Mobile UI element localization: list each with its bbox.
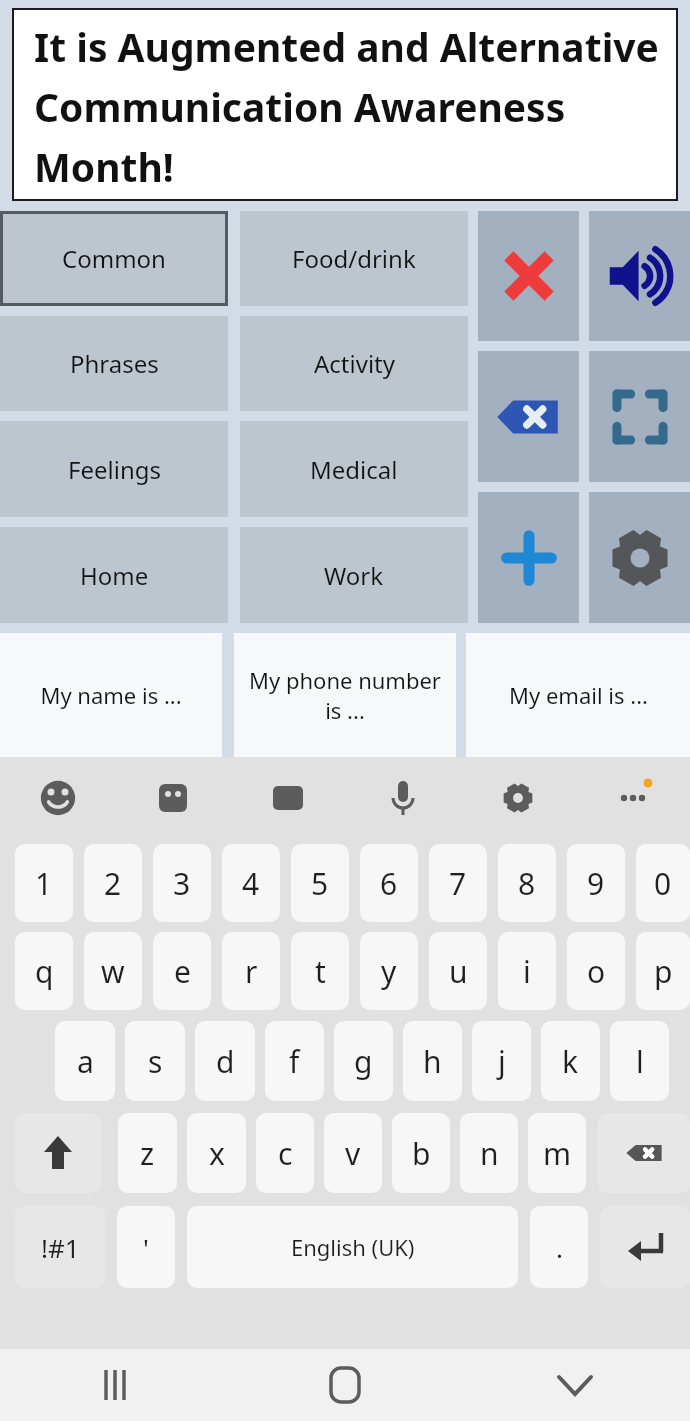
button[interactable]: !#1 [15, 1206, 105, 1288]
button[interactable]: 0 [636, 844, 690, 922]
staticText: 2 [104, 863, 122, 904]
button[interactable]: Home [0, 527, 228, 623]
staticText: . [556, 1230, 563, 1265]
staticText: 9 [587, 863, 605, 904]
staticText: 7 [449, 863, 467, 904]
staticText: y [381, 951, 397, 992]
staticText: q [35, 951, 54, 992]
button[interactable]: x [187, 1113, 246, 1193]
staticText: i [523, 951, 531, 992]
button[interactable]: l [610, 1021, 669, 1101]
button[interactable]: Activity [240, 316, 468, 411]
button[interactable]: g [334, 1021, 393, 1101]
button[interactable]: Medical [240, 421, 468, 517]
staticText: j [498, 1041, 506, 1082]
button[interactable]: 7 [429, 844, 487, 922]
button[interactable]: More [575, 757, 690, 839]
staticText: 6 [380, 863, 398, 904]
staticText: Food/drink [292, 242, 416, 275]
button[interactable]: 3 [153, 844, 211, 922]
button[interactable]: Emoji [0, 757, 115, 839]
staticText: Phrases [70, 347, 159, 380]
staticText: z [140, 1133, 155, 1174]
button[interactable]: Phrases [0, 316, 228, 411]
button[interactable]: Clear [478, 211, 579, 341]
button[interactable]: m [528, 1113, 586, 1193]
button[interactable]: Fullscreen [589, 351, 690, 482]
staticText: m [543, 1133, 572, 1174]
staticText: l [636, 1041, 644, 1082]
button[interactable]: z [118, 1113, 177, 1193]
button[interactable]: Speak [589, 211, 690, 341]
button[interactable]: n [460, 1113, 518, 1193]
button[interactable]: r [222, 932, 280, 1010]
staticText: Work [324, 559, 384, 592]
button[interactable]: Work [240, 527, 468, 623]
button[interactable]: j [472, 1021, 531, 1101]
button[interactable]: Add [478, 492, 579, 623]
button[interactable]: 6 [360, 844, 418, 922]
button[interactable]: Backspace [478, 351, 579, 482]
staticText: My name is ... [40, 680, 182, 710]
staticText: It is Augmented and Alternative Communic… [34, 20, 678, 194]
staticText: r [245, 951, 258, 992]
button[interactable]: Stickers [115, 757, 230, 839]
staticText: English (UK) [291, 1232, 415, 1262]
button[interactable]: ' [117, 1206, 175, 1288]
button[interactable]: c [256, 1113, 314, 1193]
button[interactable]: Hide keyboard [460, 1349, 690, 1421]
button[interactable]: Backspace [598, 1113, 690, 1193]
staticText: ' [143, 1230, 149, 1265]
button[interactable]: My name is ... [0, 633, 222, 757]
button[interactable]: f [265, 1021, 324, 1101]
staticText: My phone number is ... [244, 665, 446, 725]
button[interactable]: Common [0, 211, 228, 306]
button[interactable]: Settings [589, 492, 690, 623]
button[interactable]: 9 [567, 844, 625, 922]
staticText: !#1 [41, 1230, 80, 1265]
staticText: 1 [35, 863, 53, 904]
button[interactable]: Keyboard settings [460, 757, 575, 839]
button[interactable]: t [291, 932, 349, 1010]
staticText: k [562, 1041, 579, 1082]
button[interactable]: 2 [84, 844, 142, 922]
button[interactable]: It is Augmented and Alternative Communic… [12, 8, 678, 201]
button[interactable]: My email is ... [466, 633, 690, 757]
button[interactable]: GIF [230, 757, 345, 839]
button[interactable]: Enter [600, 1206, 690, 1288]
staticText: t [315, 951, 326, 992]
button[interactable]: 4 [222, 844, 280, 922]
button[interactable]: 8 [498, 844, 556, 922]
button[interactable]: v [324, 1113, 382, 1193]
button[interactable]: w [84, 932, 142, 1010]
button[interactable]: i [498, 932, 556, 1010]
staticText: p [654, 951, 673, 992]
button[interactable]: h [403, 1021, 462, 1101]
button[interactable]: e [153, 932, 211, 1010]
button[interactable]: English (UK) [187, 1206, 518, 1288]
button[interactable]: Recents [0, 1349, 230, 1421]
button[interactable]: Shift [15, 1113, 101, 1193]
button[interactable]: My phone number is ... [234, 633, 456, 757]
button[interactable]: y [360, 932, 418, 1010]
staticText: s [148, 1041, 163, 1082]
button[interactable]: a [55, 1021, 115, 1101]
button[interactable]: 5 [291, 844, 349, 922]
button[interactable]: p [636, 932, 690, 1010]
button[interactable]: Home [230, 1349, 460, 1421]
button[interactable]: q [15, 932, 73, 1010]
staticText: Home [80, 559, 149, 592]
button[interactable]: . [530, 1206, 588, 1288]
button[interactable]: k [541, 1021, 600, 1101]
button[interactable]: 1 [15, 844, 73, 922]
staticText: 5 [311, 863, 329, 904]
button[interactable]: s [125, 1021, 185, 1101]
button[interactable]: Feelings [0, 421, 228, 517]
staticText: Common [62, 242, 166, 275]
button[interactable]: Voice input [345, 757, 460, 839]
button[interactable]: u [429, 932, 487, 1010]
button[interactable]: Food/drink [240, 211, 468, 306]
button[interactable]: d [195, 1021, 255, 1101]
button[interactable]: o [567, 932, 625, 1010]
button[interactable]: b [392, 1113, 450, 1193]
